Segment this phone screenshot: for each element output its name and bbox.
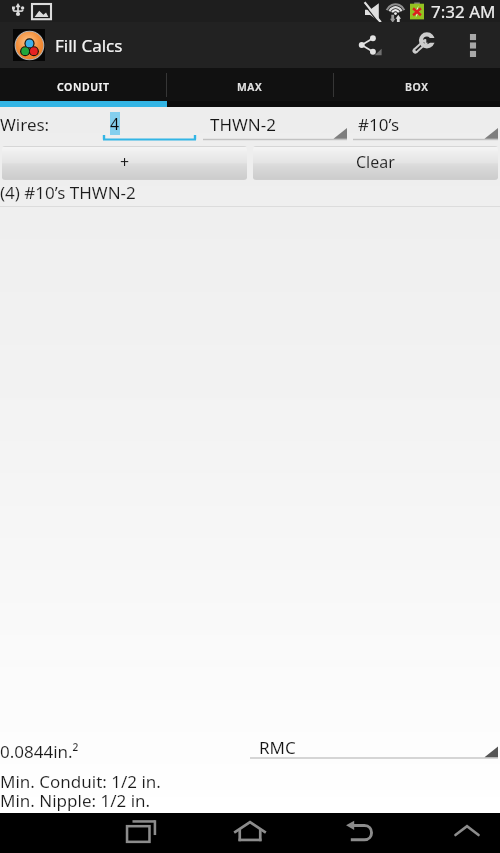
button[interactable]: Hide keyboard (445, 816, 489, 850)
staticText: THWN-2 (210, 113, 276, 136)
button[interactable]: More options (455, 22, 491, 68)
button[interactable]: Settings (398, 22, 444, 68)
staticText: + (120, 151, 130, 173)
button[interactable]: CONDUIT (0, 68, 166, 101)
staticText: 0.0844in.² (0, 740, 79, 763)
staticText: Clear (356, 151, 395, 173)
staticText: Min. Conduit: 1/2 in. (0, 770, 161, 793)
button[interactable]: BOX (333, 68, 500, 101)
button[interactable]: MAX (166, 68, 333, 101)
button[interactable]: Back (339, 816, 383, 850)
staticText: 4 (110, 113, 120, 135)
button[interactable]: Recent apps (120, 816, 164, 850)
staticText: 7:32 AM (431, 0, 496, 21)
staticText: CONDUIT (57, 80, 110, 94)
staticText: (4) #10’s THWN-2 (0, 181, 136, 204)
staticText: BOX (405, 80, 429, 94)
button[interactable]: Share (346, 22, 392, 68)
button[interactable]: (4) #10’s THWN-2 (0, 180, 500, 207)
staticText: #10’s (358, 113, 400, 136)
staticText: Fill Calcs (55, 34, 123, 57)
staticText: MAX (237, 80, 263, 94)
staticText: Wires: (0, 113, 50, 136)
staticText: RMC (259, 736, 296, 759)
button[interactable]: Home (228, 816, 272, 850)
button[interactable]: + (2, 146, 247, 179)
button[interactable]: Clear (253, 146, 498, 179)
staticText: Min. Nipple: 1/2 in. (0, 789, 151, 812)
